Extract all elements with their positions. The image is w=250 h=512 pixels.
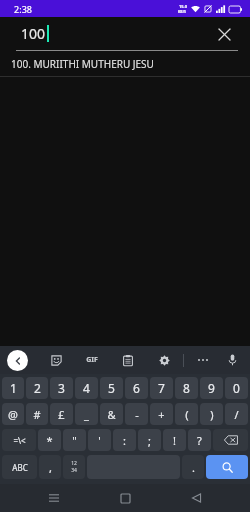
button[interactable]: ' [88,429,111,451]
button[interactable]: - [125,403,148,425]
button[interactable]: ! [163,429,186,451]
staticText: 8 [183,380,190,396]
button[interactable]: GIF [81,349,103,371]
button[interactable]: & [100,403,123,425]
button[interactable]: ABC [2,455,37,479]
staticText: / [234,407,239,422]
button[interactable]: 1 [2,377,24,399]
button[interactable]: Stickers [45,349,67,371]
staticText: ! [173,433,176,448]
staticText: & [107,407,116,422]
staticText: 5 [108,380,115,396]
staticText: 15.0 [179,4,187,9]
button[interactable]: Backspace [213,429,248,451]
staticText: £ [58,407,65,422]
staticText: " [72,433,77,448]
button[interactable]: 100. MURIITHI MUTHERU JESU [0,51,250,76]
staticText: 12 [71,460,77,467]
button[interactable]: More options [192,349,214,371]
button[interactable]: Home [108,484,142,512]
button[interactable]: @ [2,403,24,425]
button[interactable]: 6 [125,377,148,399]
button[interactable]: Settings [153,349,175,371]
button[interactable]: 8 [175,377,198,399]
button[interactable]: * [38,429,61,451]
button[interactable]: " [63,429,86,451]
button[interactable]: ; [138,429,161,451]
button[interactable]: 3 [50,377,73,399]
staticText: + [158,407,165,422]
staticText: . [192,460,195,475]
staticText: - [135,407,139,422]
staticText: : [123,433,126,448]
button[interactable]: + [150,403,173,425]
button[interactable]: 7 [150,377,173,399]
staticText: =\< [13,435,26,446]
staticText: 4 [83,380,90,396]
staticText: @ [8,407,18,422]
staticText: , [49,460,52,475]
staticText: ) [210,407,214,422]
button[interactable]: Voice input [220,348,244,372]
button[interactable]: : [113,429,136,451]
button[interactable]: 100 [0,17,250,50]
staticText: * [46,433,53,448]
button[interactable]: =\< [2,429,36,451]
button[interactable]: Clear search [212,22,236,46]
staticText: 3 [58,380,65,396]
staticText: ? [197,433,202,448]
staticText: 9 [208,380,215,396]
button[interactable]: £ [50,403,73,425]
button[interactable]: 4 [75,377,98,399]
staticText: ( [185,407,189,422]
button[interactable]: 2 [26,377,48,399]
button[interactable]: . [182,455,204,479]
staticText: _ [84,407,89,422]
staticText: 2 [34,380,41,396]
staticText: GIF [86,355,98,365]
button[interactable]: 5 [100,377,123,399]
staticText: 100 [21,24,46,43]
staticText: 2:38 [14,3,32,15]
staticText: ABC [12,462,28,473]
button[interactable]: Recent apps [37,484,71,512]
button[interactable]: 0 [225,377,248,399]
staticText: 7 [158,380,165,396]
button[interactable]: 9 [200,377,223,399]
button[interactable]: # [26,403,48,425]
staticText: 34 [71,467,77,474]
button[interactable]: Back [7,350,28,371]
button[interactable]: , [39,455,61,479]
staticText: ' [98,433,101,448]
button[interactable]: ) [200,403,223,425]
button[interactable]: Back [179,484,213,512]
button[interactable]: ? [188,429,211,451]
staticText: 1 [10,380,17,396]
staticText: 6 [133,380,140,396]
staticText: # [33,407,41,422]
staticText: 100. MURIITHI MUTHERU JESU [11,57,154,71]
staticText: 0 [233,380,240,396]
staticText: ; [148,433,151,448]
button[interactable]: Clipboard [117,349,139,371]
button[interactable]: / [225,403,248,425]
button[interactable]: ( [175,403,198,425]
button[interactable]: _ [75,403,98,425]
button[interactable]: Search [206,455,248,479]
staticText: KB/S [178,9,187,14]
button[interactable]: Numbers [63,455,85,479]
